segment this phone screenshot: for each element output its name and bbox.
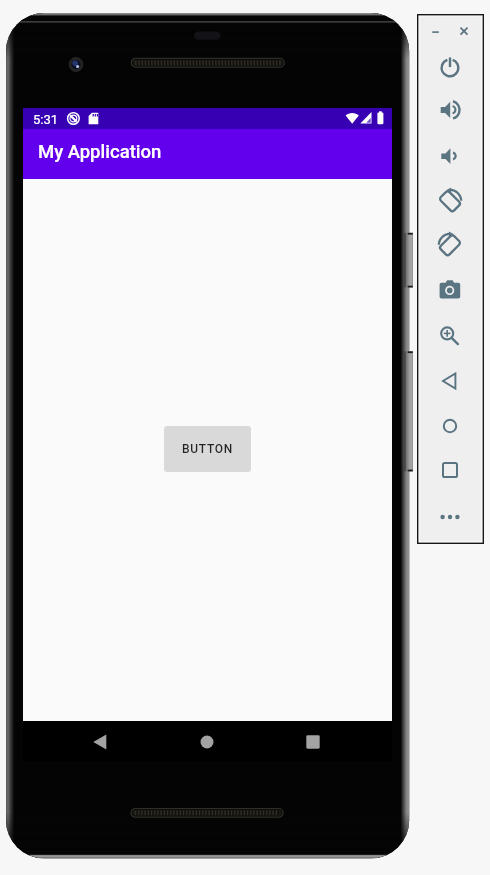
button[interactable]: Rotate left [434,185,466,217]
button[interactable]: Back [80,722,120,762]
button[interactable]: BUTTON [164,426,251,472]
staticText: BUTTON [182,442,233,456]
button[interactable]: More [434,501,466,533]
button[interactable]: Volume down [434,140,466,172]
staticText: 5:31 [33,112,59,127]
button[interactable]: Volume up [434,94,466,126]
button[interactable]: Rotate right [434,229,466,261]
button[interactable]: Minimize [425,21,447,43]
button[interactable]: Back [434,365,466,397]
button[interactable]: Take screenshot [434,274,466,306]
button[interactable]: Recent apps [293,722,333,762]
button[interactable]: Home [434,410,466,442]
button[interactable]: Close [453,20,475,42]
button[interactable]: Power [434,51,466,83]
button[interactable]: Zoom [434,318,466,350]
button[interactable]: Home [187,722,227,762]
button[interactable]: Overview [434,454,466,486]
staticText: My Application [38,141,162,163]
